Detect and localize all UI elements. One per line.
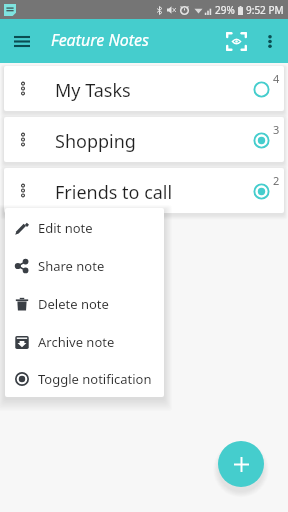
staticText: 29% <box>215 3 235 17</box>
staticText: Shopping <box>55 129 136 154</box>
button[interactable]: Scan <box>222 27 250 55</box>
staticText: 9:52 PM <box>246 3 284 17</box>
staticText: Edit note <box>38 219 93 237</box>
staticText: My Tasks <box>55 78 131 103</box>
button[interactable]: Delete note <box>5 285 164 323</box>
staticText: 4 <box>273 71 280 86</box>
button[interactable]: Friends to call <box>4 168 284 213</box>
staticText: Archive note <box>38 333 115 351</box>
staticText: Delete note <box>38 295 109 313</box>
button[interactable]: Archive note <box>5 323 164 361</box>
staticText: Share note <box>38 257 105 275</box>
button[interactable]: Edit note <box>5 209 164 247</box>
staticText: Toggle notification <box>38 370 152 388</box>
button[interactable]: Share note <box>5 247 164 285</box>
staticText: Feature Notes <box>51 29 150 51</box>
staticText: Friends to call <box>55 180 173 205</box>
staticText: 3 <box>273 122 280 137</box>
button[interactable]: Shopping <box>4 117 284 162</box>
button[interactable]: Menu <box>7 26 37 56</box>
button[interactable]: My Tasks <box>4 66 284 111</box>
button[interactable]: Add note <box>218 441 264 487</box>
button[interactable]: More options <box>258 29 282 53</box>
staticText: 2 <box>273 173 280 188</box>
button[interactable]: Toggle notification <box>5 361 164 396</box>
